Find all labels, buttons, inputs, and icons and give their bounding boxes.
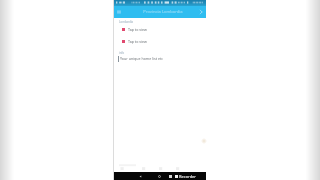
button[interactable]: Open navigation menu <box>115 8 123 16</box>
staticText: Tap to view <box>128 27 147 32</box>
button[interactable]: Recorder <box>169 174 197 179</box>
staticText: Provincia Lombardia <box>143 9 183 15</box>
staticText: Lombardia <box>119 20 134 24</box>
button[interactable]: Back <box>138 174 143 179</box>
staticText: Recorder <box>179 174 197 179</box>
button[interactable]: Tap to view <box>114 24 206 35</box>
button[interactable]: Next <box>197 8 205 16</box>
button[interactable]: Tap to view <box>114 36 206 47</box>
staticText: Your unique home list etc <box>120 56 164 61</box>
button[interactable]: Home <box>157 174 162 179</box>
staticText: Tap to view <box>128 39 147 44</box>
staticText: info <box>119 51 125 55</box>
